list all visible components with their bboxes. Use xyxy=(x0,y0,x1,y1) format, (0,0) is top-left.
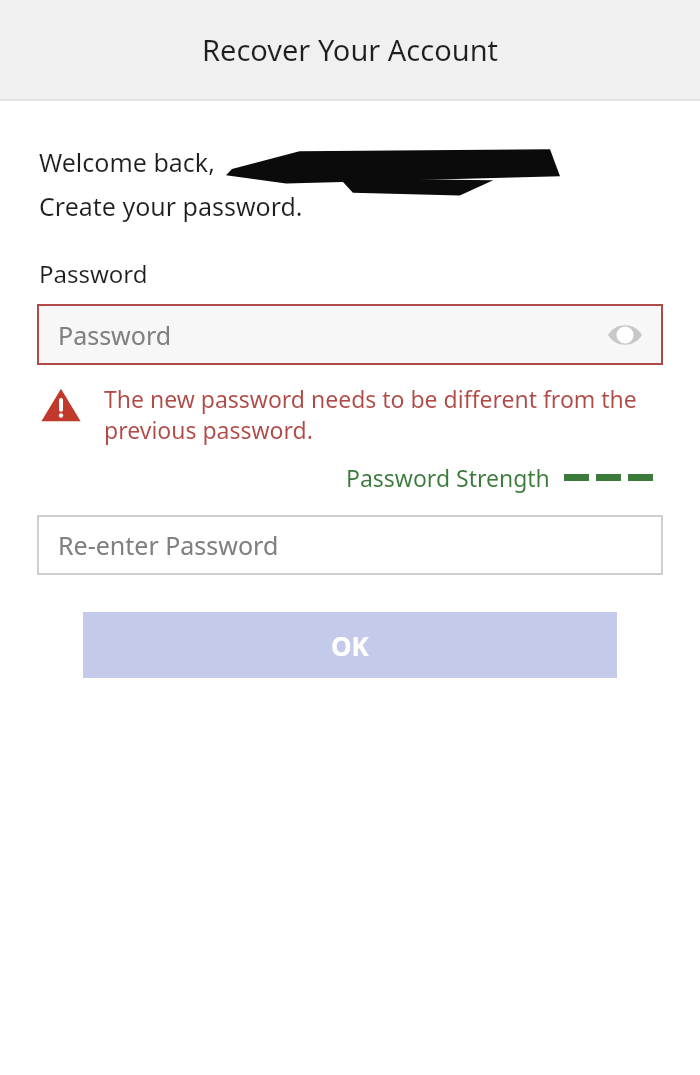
staticText: Password xyxy=(39,257,148,290)
staticText: Welcome back, xyxy=(39,145,222,179)
staticText: Password xyxy=(58,318,172,352)
staticText: The new password needs to be different f… xyxy=(104,383,656,446)
staticText: Password Strength xyxy=(346,462,550,493)
staticText: OK xyxy=(331,628,369,663)
staticText: Re-enter Password xyxy=(58,528,279,562)
staticText: Create your password. xyxy=(39,189,303,223)
button[interactable]: Re-enter Password xyxy=(37,515,663,575)
staticText: Recover Your Account xyxy=(202,30,499,69)
button[interactable]: Show password xyxy=(608,322,642,348)
button[interactable]: OK xyxy=(83,612,617,678)
button[interactable]: Password xyxy=(37,304,663,365)
